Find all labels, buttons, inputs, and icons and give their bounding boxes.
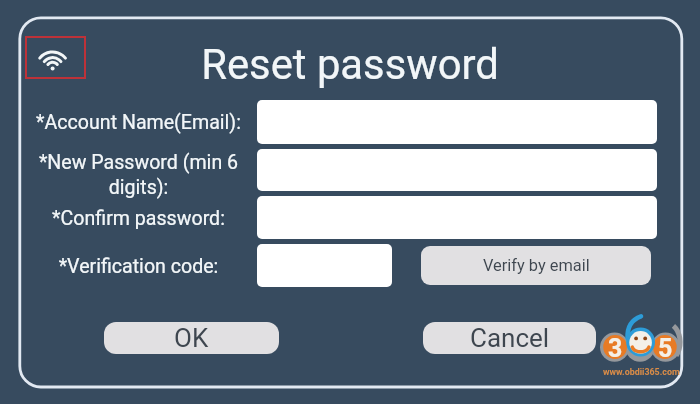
- staticText: 3: [608, 334, 623, 363]
- button[interactable]: Input field: [257, 196, 657, 239]
- button[interactable]: Verify by email: [421, 246, 651, 285]
- staticText: OK: [174, 323, 209, 353]
- button[interactable]: Input field: [257, 149, 657, 191]
- button[interactable]: Input field: [257, 100, 657, 144]
- button[interactable]: Input field: [257, 244, 392, 287]
- staticText: *Account Name(Email):: [25, 111, 252, 134]
- staticText: Cancel: [470, 323, 550, 353]
- staticText: 5: [658, 334, 673, 363]
- staticText: www.obdii365.com: [603, 367, 680, 377]
- staticText: *Verification code:: [25, 255, 252, 278]
- button[interactable]: WiFi: [25, 36, 86, 79]
- staticText: *New Password (min 6 digits):: [25, 151, 252, 199]
- staticText: *Confirm password:: [25, 207, 252, 230]
- button[interactable]: Cancel: [423, 322, 596, 354]
- other: obdii365 watermark: [593, 313, 693, 385]
- button[interactable]: OK: [104, 322, 279, 354]
- staticText: Reset password: [0, 40, 700, 89]
- staticText: Verify by email: [483, 256, 590, 275]
